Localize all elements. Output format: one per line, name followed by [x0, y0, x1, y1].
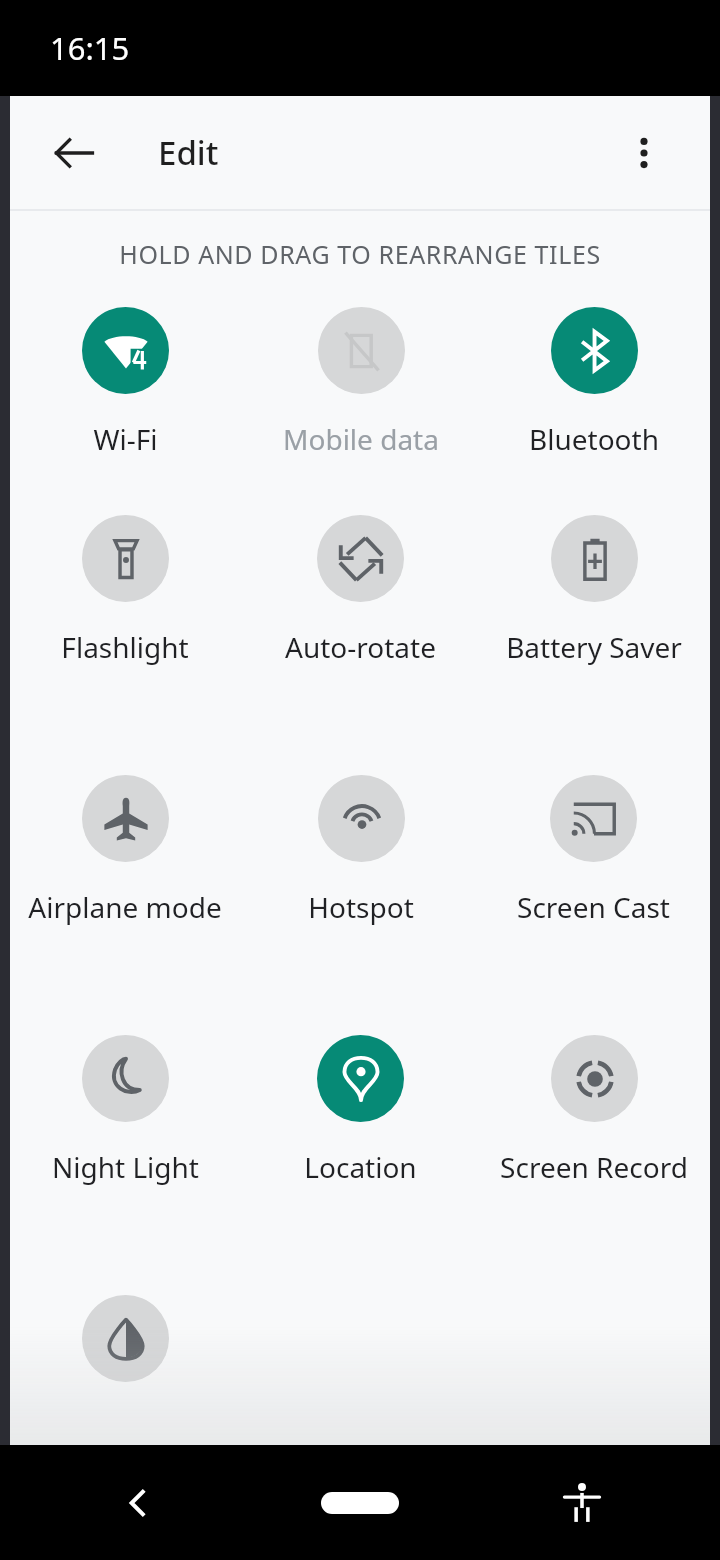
- staticText: Mobile data: [283, 420, 439, 458]
- staticText: HOLD AND DRAG TO REARRANGE TILES: [10, 237, 710, 271]
- button[interactable]: Screen Cast: [517, 775, 670, 926]
- button[interactable]: Airplane mode: [28, 775, 222, 926]
- button[interactable]: Invert colors: [82, 1295, 169, 1382]
- staticText: Auto-rotate: [285, 628, 436, 666]
- button[interactable]: Mobile data: [283, 307, 439, 458]
- button[interactable]: Wi-Fi: [82, 307, 169, 458]
- staticText: Flashlight: [61, 628, 189, 666]
- button[interactable]: Battery Saver: [506, 515, 682, 666]
- staticText: Hotspot: [308, 888, 414, 926]
- button[interactable]: Back: [100, 1465, 176, 1541]
- staticText: Wi-Fi: [93, 420, 158, 458]
- button[interactable]: Bluetooth: [529, 307, 659, 458]
- staticText: Airplane mode: [28, 888, 222, 926]
- button[interactable]: Navigate up: [32, 111, 116, 195]
- staticText: Edit: [158, 130, 219, 175]
- button[interactable]: More options: [602, 111, 686, 195]
- staticText: Screen Record: [500, 1148, 688, 1186]
- staticText: Screen Cast: [517, 888, 670, 926]
- button[interactable]: Flashlight: [61, 515, 189, 666]
- button[interactable]: Location: [304, 1035, 417, 1186]
- button[interactable]: Auto-rotate: [285, 515, 436, 666]
- staticText: Night Light: [52, 1148, 199, 1186]
- staticText: Location: [304, 1148, 417, 1186]
- staticText: 16:15: [50, 27, 130, 69]
- button[interactable]: Screen Record: [500, 1035, 688, 1186]
- button[interactable]: Night Light: [52, 1035, 199, 1186]
- button[interactable]: Home: [305, 1468, 415, 1538]
- staticText: Battery Saver: [506, 628, 682, 666]
- button[interactable]: Accessibility: [544, 1465, 620, 1541]
- button[interactable]: Hotspot: [308, 775, 414, 926]
- staticText: Bluetooth: [529, 420, 659, 458]
